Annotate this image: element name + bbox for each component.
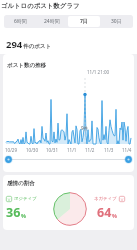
- staticText: 9件: [81, 125, 89, 131]
- staticText: %: [21, 212, 26, 219]
- staticText: 6時間: [14, 18, 27, 25]
- staticText: 7日: [80, 18, 88, 25]
- staticText: ゴルトロのポスト数グラフ: [1, 2, 80, 10]
- staticText: 11/4: [122, 147, 132, 153]
- staticText: 30日: [111, 18, 122, 25]
- staticText: 感情の割合: [7, 180, 35, 187]
- staticText: 36: [6, 204, 21, 221]
- staticText: 24時間: [44, 18, 60, 25]
- button[interactable]: 30日: [100, 16, 132, 27]
- staticText: %: [112, 212, 117, 219]
- staticText: ネガティブ: [94, 196, 117, 202]
- staticText: 10/31: [46, 147, 58, 153]
- button[interactable]: Range handle: [124, 155, 133, 164]
- button[interactable]: 7日: [68, 16, 100, 27]
- staticText: 10/29: [5, 147, 17, 153]
- staticText: 10/30: [26, 147, 38, 153]
- staticText: 11/2: [85, 147, 95, 153]
- staticText: 件のポスト: [23, 43, 52, 50]
- staticText: 11/1 21:00: [87, 69, 110, 75]
- staticText: ポジティブ: [14, 196, 37, 202]
- button[interactable]: Range handle: [4, 155, 13, 164]
- staticText: ポスト数の推移: [7, 62, 47, 69]
- staticText: 64: [97, 204, 112, 221]
- button[interactable]: 24時間: [36, 16, 68, 27]
- staticText: 11/1: [67, 147, 77, 153]
- staticText: 294: [6, 38, 23, 51]
- button[interactable]: 6時間: [5, 16, 36, 27]
- staticText: 11/3: [104, 147, 114, 153]
